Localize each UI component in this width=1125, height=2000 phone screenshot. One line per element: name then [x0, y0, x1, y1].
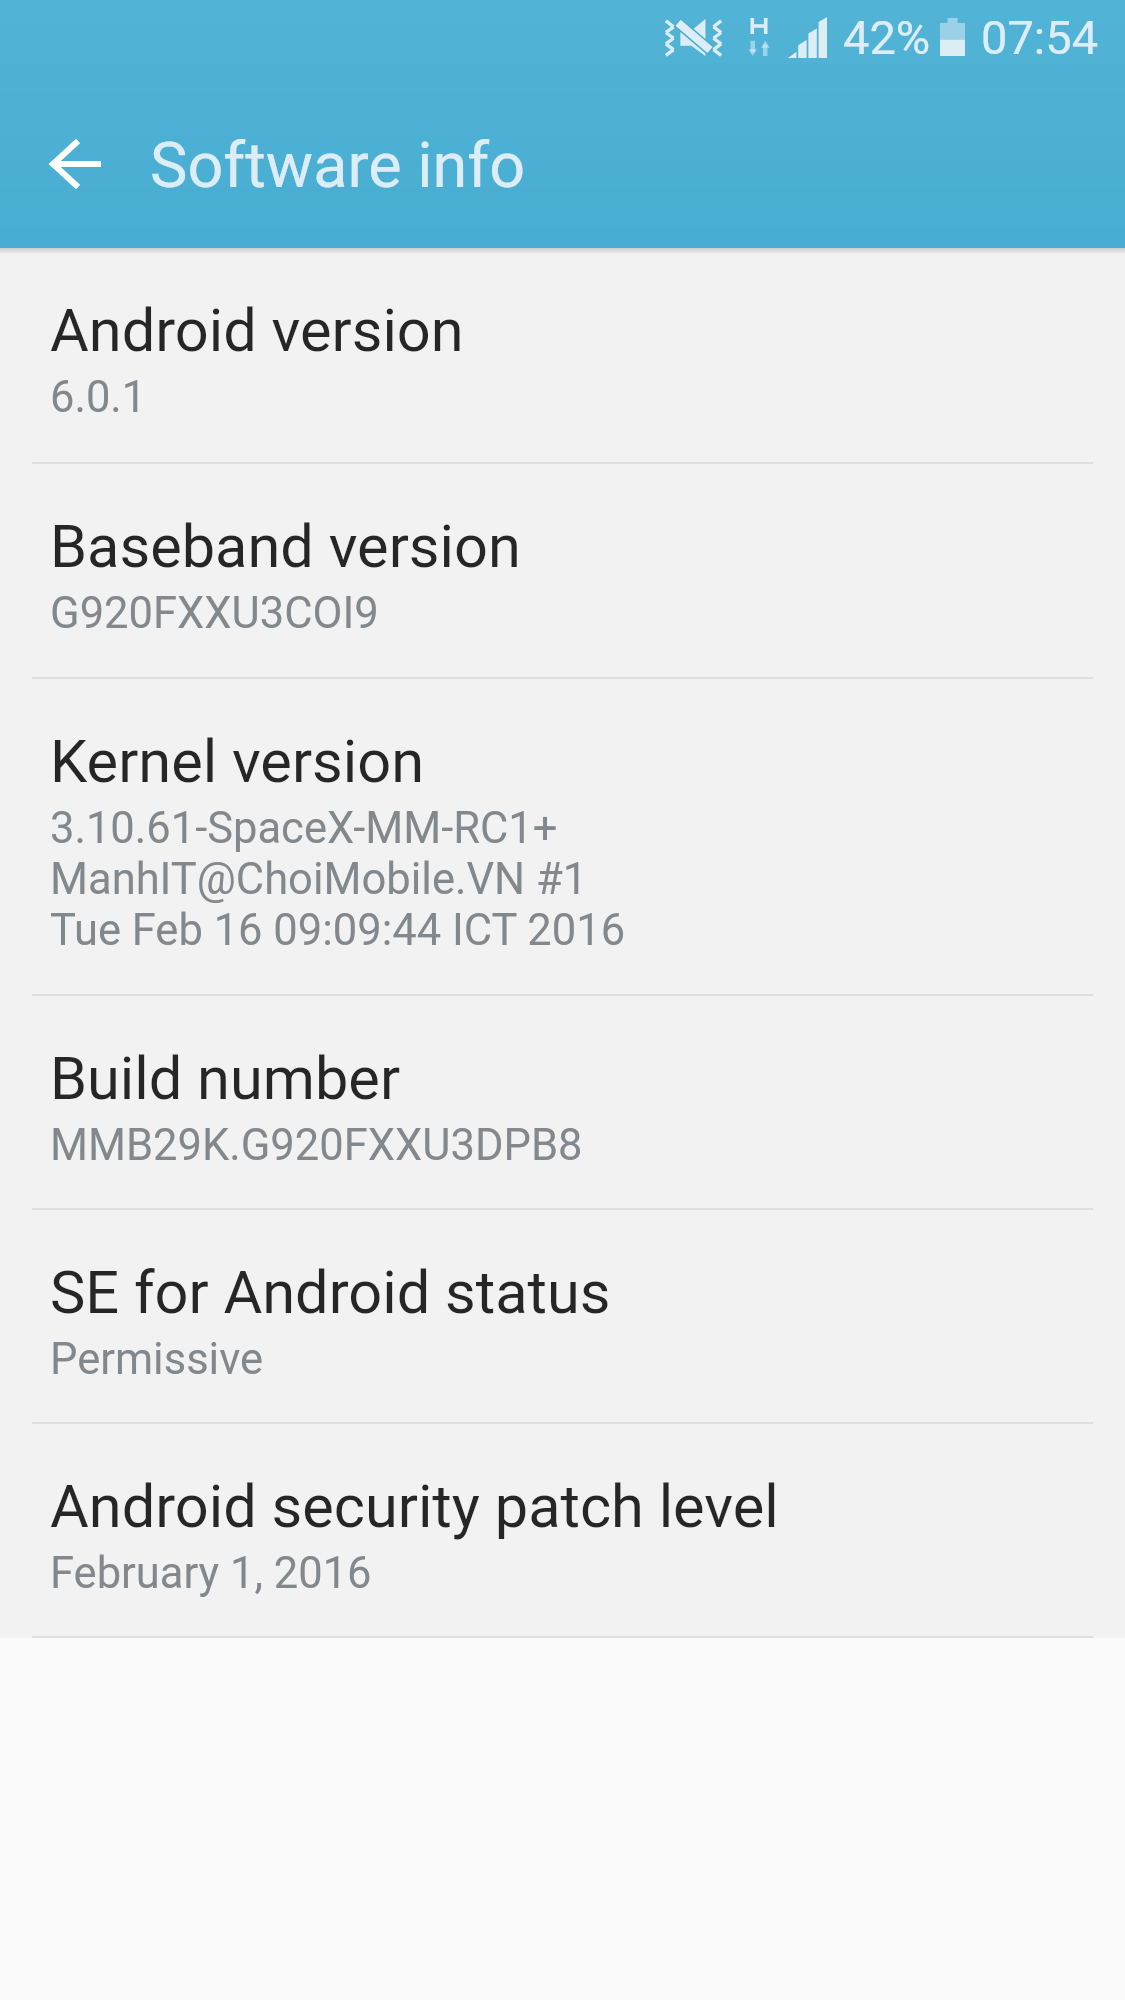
staticText: Android security patch level	[50, 1472, 779, 1542]
button[interactable]: Baseband version	[0, 464, 1125, 679]
staticText: Build number	[50, 1044, 401, 1114]
staticText: 42%	[843, 10, 931, 65]
staticText: 6.0.1	[50, 372, 147, 423]
staticText: 07:54	[981, 10, 1099, 65]
staticText: 3.10.61-SpaceX-MM-RC1+	[50, 803, 558, 854]
staticText: Tue Feb 16 09:09:44 ICT 2016	[50, 905, 626, 956]
button[interactable]: Android version	[0, 248, 1125, 464]
button[interactable]: Navigate up	[20, 109, 130, 219]
staticText: ManhIT@ChoiMobile.VN #1	[50, 854, 588, 905]
staticText: G920FXXU3COI9	[50, 588, 379, 639]
staticText: Kernel version	[50, 727, 425, 797]
staticText: Baseband version	[50, 512, 521, 582]
button[interactable]: Kernel version	[0, 679, 1125, 996]
button[interactable]: SE for Android status	[0, 1210, 1125, 1424]
staticText: SE for Android status	[50, 1258, 611, 1328]
staticText: Software info	[150, 129, 526, 203]
staticText: February 1, 2016	[50, 1548, 372, 1599]
staticText: MMB29K.G920FXXU3DPB8	[50, 1120, 583, 1171]
button[interactable]: Android security patch level	[0, 1424, 1125, 1638]
button[interactable]: Build number	[0, 996, 1125, 1210]
staticText: Permissive	[50, 1334, 264, 1385]
staticText: Android version	[50, 296, 464, 366]
